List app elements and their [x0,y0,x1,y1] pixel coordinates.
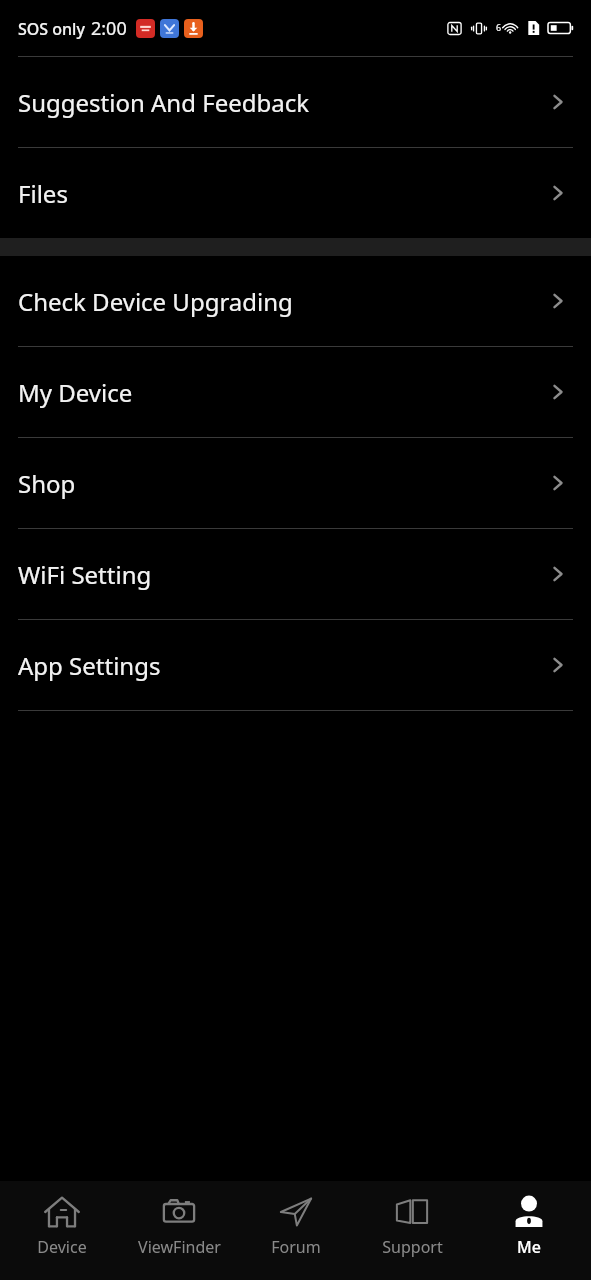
button[interactable]: ViewFinder [124,1181,234,1258]
staticText: Shop [18,467,547,500]
button[interactable]: Support [357,1181,467,1258]
staticText: WiFi Setting [18,558,547,591]
button[interactable]: Forum [241,1181,351,1258]
staticText: My Device [18,376,547,409]
button[interactable]: Shop [0,438,591,528]
button[interactable]: Check Device Upgrading [0,256,591,346]
staticText: Files [18,177,547,210]
staticText: Support [382,1236,443,1258]
staticText: 2:00 [91,16,127,41]
button[interactable]: WiFi Setting [0,529,591,619]
staticText: Check Device Upgrading [18,285,547,318]
staticText: App Settings [18,649,547,682]
staticText: Device [37,1236,87,1258]
button[interactable]: My Device [0,347,591,437]
staticText: Suggestion And Feedback [18,86,547,119]
button[interactable]: Files [0,148,591,238]
button[interactable]: App Settings [0,620,591,710]
staticText: SOS only [18,18,85,40]
staticText: ViewFinder [138,1236,221,1258]
button[interactable]: Device [7,1181,117,1258]
staticText: Me [517,1236,541,1258]
button[interactable]: Me [474,1181,584,1258]
button[interactable]: Suggestion And Feedback [0,57,591,147]
staticText: 6 [496,21,502,33]
staticText: Forum [271,1236,321,1258]
